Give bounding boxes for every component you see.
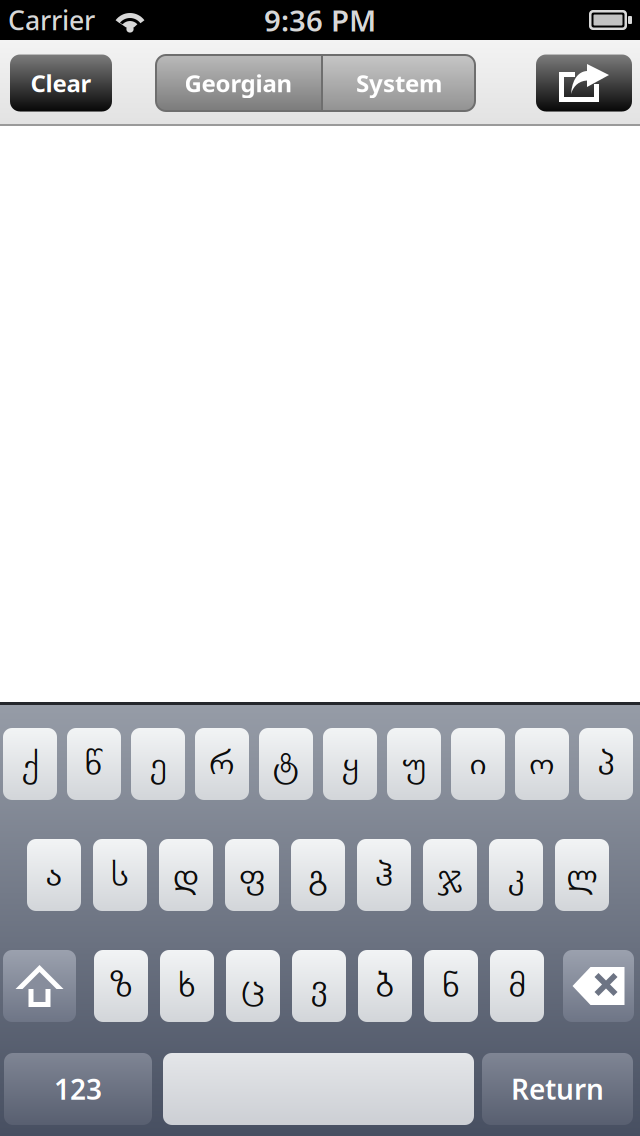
button[interactable]: დ: [159, 839, 213, 911]
staticText: Clear: [30, 67, 91, 99]
staticText: გ: [308, 857, 327, 893]
staticText: ე: [150, 746, 166, 782]
staticText: ფ: [239, 857, 264, 893]
button[interactable]: ხ: [160, 950, 214, 1022]
staticText: ზ: [109, 968, 132, 1004]
button[interactable]: Georgian: [156, 55, 321, 111]
staticText: Georgian: [184, 67, 292, 99]
button[interactable]: ჯ: [423, 839, 477, 911]
button[interactable]: ს: [93, 839, 147, 911]
button[interactable]: ე: [131, 728, 185, 800]
button[interactable]: Return: [482, 1053, 633, 1125]
button[interactable]: ტ: [259, 728, 313, 800]
button[interactable]: ჰ: [357, 839, 411, 911]
staticText: 9:36 PM: [264, 0, 376, 39]
button[interactable]: ბ: [358, 950, 412, 1022]
staticText: წ: [85, 746, 102, 782]
button[interactable]: გ: [291, 839, 345, 911]
button[interactable]: მ: [490, 950, 544, 1022]
staticText: ქ: [22, 746, 38, 782]
button[interactable]: წ: [67, 728, 121, 800]
staticText: ს: [111, 857, 128, 893]
button[interactable]: ვ: [292, 950, 346, 1022]
staticText: ც: [241, 968, 264, 1004]
staticText: 123: [54, 1070, 102, 1108]
button[interactable]: ფ: [225, 839, 279, 911]
button[interactable]: Shift: [3, 950, 76, 1022]
button[interactable]: ა: [27, 839, 81, 911]
button[interactable]: System: [323, 55, 475, 111]
staticText: ჯ: [438, 857, 462, 893]
staticText: მ: [509, 968, 525, 1004]
staticText: ო: [529, 746, 554, 782]
staticText: უ: [403, 746, 425, 782]
staticText: რ: [209, 746, 234, 782]
staticText: პ: [598, 746, 614, 782]
staticText: ჰ: [375, 857, 392, 893]
button[interactable]: ყ: [323, 728, 377, 800]
staticText: ტ: [273, 746, 299, 782]
staticText: System: [356, 67, 442, 99]
staticText: ყ: [342, 746, 358, 782]
button[interactable]: 123: [4, 1053, 152, 1125]
staticText: ა: [46, 857, 62, 893]
staticText: ბ: [376, 968, 394, 1004]
button[interactable]: ნ: [424, 950, 478, 1022]
staticText: ხ: [179, 968, 195, 1004]
button[interactable]: Clear: [10, 54, 112, 111]
button[interactable]: ლ: [555, 839, 609, 911]
staticText: Return: [511, 1070, 604, 1108]
staticText: ნ: [443, 968, 459, 1004]
button[interactable]: ც: [226, 950, 280, 1022]
staticText: ვ: [311, 968, 327, 1004]
staticText: კ: [508, 857, 524, 893]
staticText: Carrier: [8, 2, 95, 38]
staticText: ლ: [567, 857, 597, 893]
staticText: ი: [470, 746, 486, 782]
button[interactable]: კ: [489, 839, 543, 911]
button[interactable]: Space: [163, 1053, 474, 1125]
button[interactable]: უ: [387, 728, 441, 800]
button[interactable]: ზ: [94, 950, 148, 1022]
button[interactable]: რ: [195, 728, 249, 800]
button[interactable]: Delete: [563, 950, 634, 1022]
staticText: დ: [173, 857, 198, 893]
button[interactable]: Share: [536, 54, 632, 111]
button[interactable]: ქ: [3, 728, 57, 800]
button[interactable]: ი: [451, 728, 505, 800]
button[interactable]: პ: [579, 728, 633, 800]
button[interactable]: ო: [515, 728, 569, 800]
